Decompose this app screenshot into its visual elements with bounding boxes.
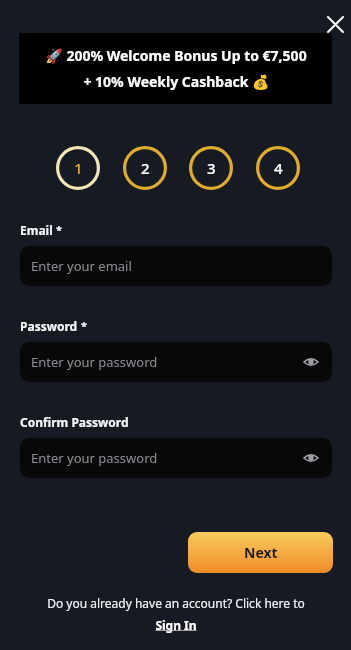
staticText: *: [56, 222, 62, 237]
staticText: Password: [20, 318, 78, 334]
button[interactable]: 1: [56, 146, 100, 190]
button[interactable]: Close: [320, 9, 351, 40]
staticText: 3: [207, 158, 216, 178]
button[interactable]: 🚀 200% Welcome Bonus Up to €7,500: [19, 33, 332, 104]
staticText: Do you already have an account? Click he…: [47, 595, 305, 611]
staticText: Sign In: [155, 617, 197, 633]
staticText: Confirm Password: [20, 414, 129, 430]
button[interactable]: Show password: [300, 351, 322, 373]
staticText: + 10% Weekly Cashback 💰: [83, 72, 270, 91]
staticText: Enter your password: [31, 449, 158, 467]
button[interactable]: Sign In: [155, 617, 197, 633]
staticText: 1: [74, 158, 83, 178]
staticText: 4: [274, 158, 283, 178]
button[interactable]: Confirm password input: [20, 438, 332, 478]
staticText: Enter your password: [31, 353, 158, 371]
staticText: Enter your email: [31, 257, 132, 275]
button[interactable]: Show password: [300, 447, 322, 469]
staticText: Next: [244, 543, 278, 562]
button[interactable]: Password input: [20, 342, 332, 382]
button[interactable]: Email input: [20, 246, 332, 286]
staticText: 🚀 200% Welcome Bonus Up to €7,500: [45, 46, 307, 65]
button[interactable]: 4: [256, 146, 300, 190]
button[interactable]: Next: [188, 532, 333, 573]
button[interactable]: 3: [189, 146, 233, 190]
staticText: Email: [20, 222, 53, 238]
staticText: *: [81, 318, 87, 333]
button[interactable]: 2: [123, 146, 167, 190]
staticText: 2: [141, 158, 150, 178]
